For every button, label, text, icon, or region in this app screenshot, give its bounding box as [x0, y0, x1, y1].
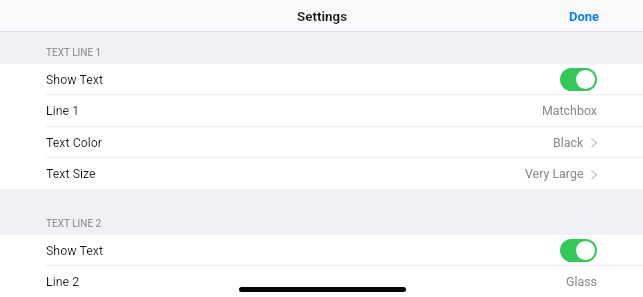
staticText: Matchbox [542, 103, 597, 118]
button[interactable]: Done [549, 5, 643, 28]
button[interactable]: Show Text [0, 64, 643, 94]
staticText: Line 1 [46, 103, 80, 118]
staticText: Glass [566, 274, 597, 289]
staticText: Text Color [46, 135, 103, 150]
staticText: Settings [297, 9, 348, 25]
staticText: Text Size [46, 166, 96, 181]
button[interactable]: Show Text [0, 235, 643, 265]
button[interactable]: Show Text, on [560, 239, 597, 262]
staticText: Line 2 [46, 274, 80, 289]
button[interactable]: Show Text, on [560, 68, 597, 91]
staticText: TEXT LINE 1 [46, 47, 102, 59]
staticText: Very Large [525, 166, 584, 181]
button[interactable]: Line 1 [0, 95, 643, 126]
staticText: Black [553, 135, 584, 150]
staticText: Show Text [46, 72, 103, 87]
button[interactable]: Line 2 [0, 266, 643, 297]
staticText: TEXT LINE 2 [46, 218, 102, 230]
staticText: Done [569, 9, 600, 24]
button[interactable]: Text Color [0, 127, 643, 157]
staticText: Show Text [46, 243, 103, 258]
button[interactable]: Text Size [0, 158, 643, 189]
